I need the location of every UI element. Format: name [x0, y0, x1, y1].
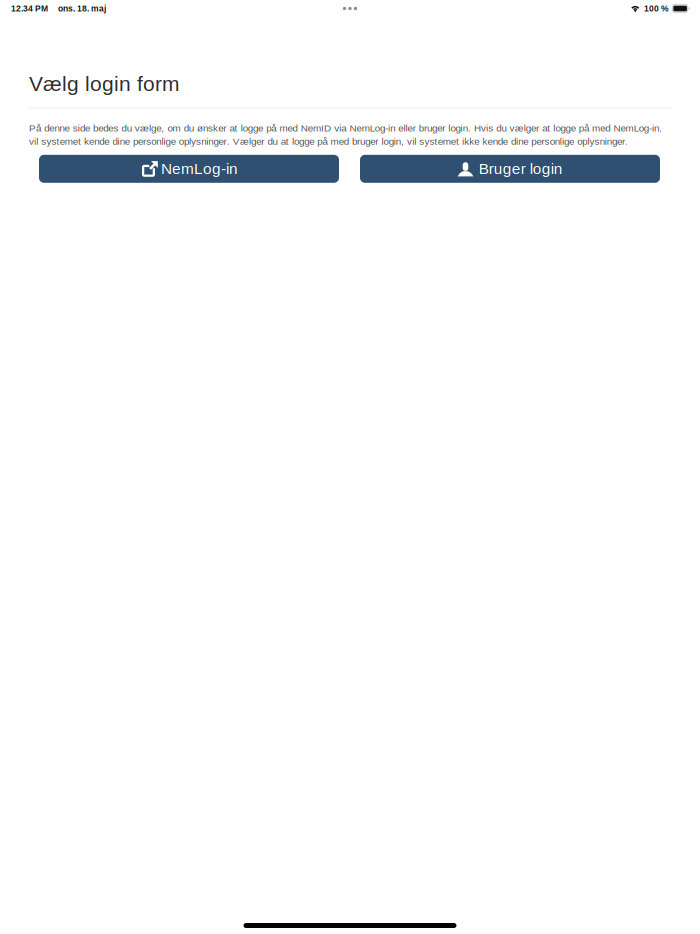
staticText: På denne side bedes du vælge, om du ønsk…: [29, 122, 662, 147]
staticText: ons. 18. maj: [58, 4, 106, 13]
button[interactable]: Bruger login: [360, 155, 660, 183]
staticText: Bruger login: [479, 160, 563, 177]
staticText: NemLog-in: [161, 160, 238, 177]
button[interactable]: NemLog-in: [39, 155, 339, 183]
staticText: Vælg login form: [29, 72, 179, 95]
staticText: 100 %: [644, 4, 669, 13]
staticText: 12.34 PM: [11, 4, 48, 13]
